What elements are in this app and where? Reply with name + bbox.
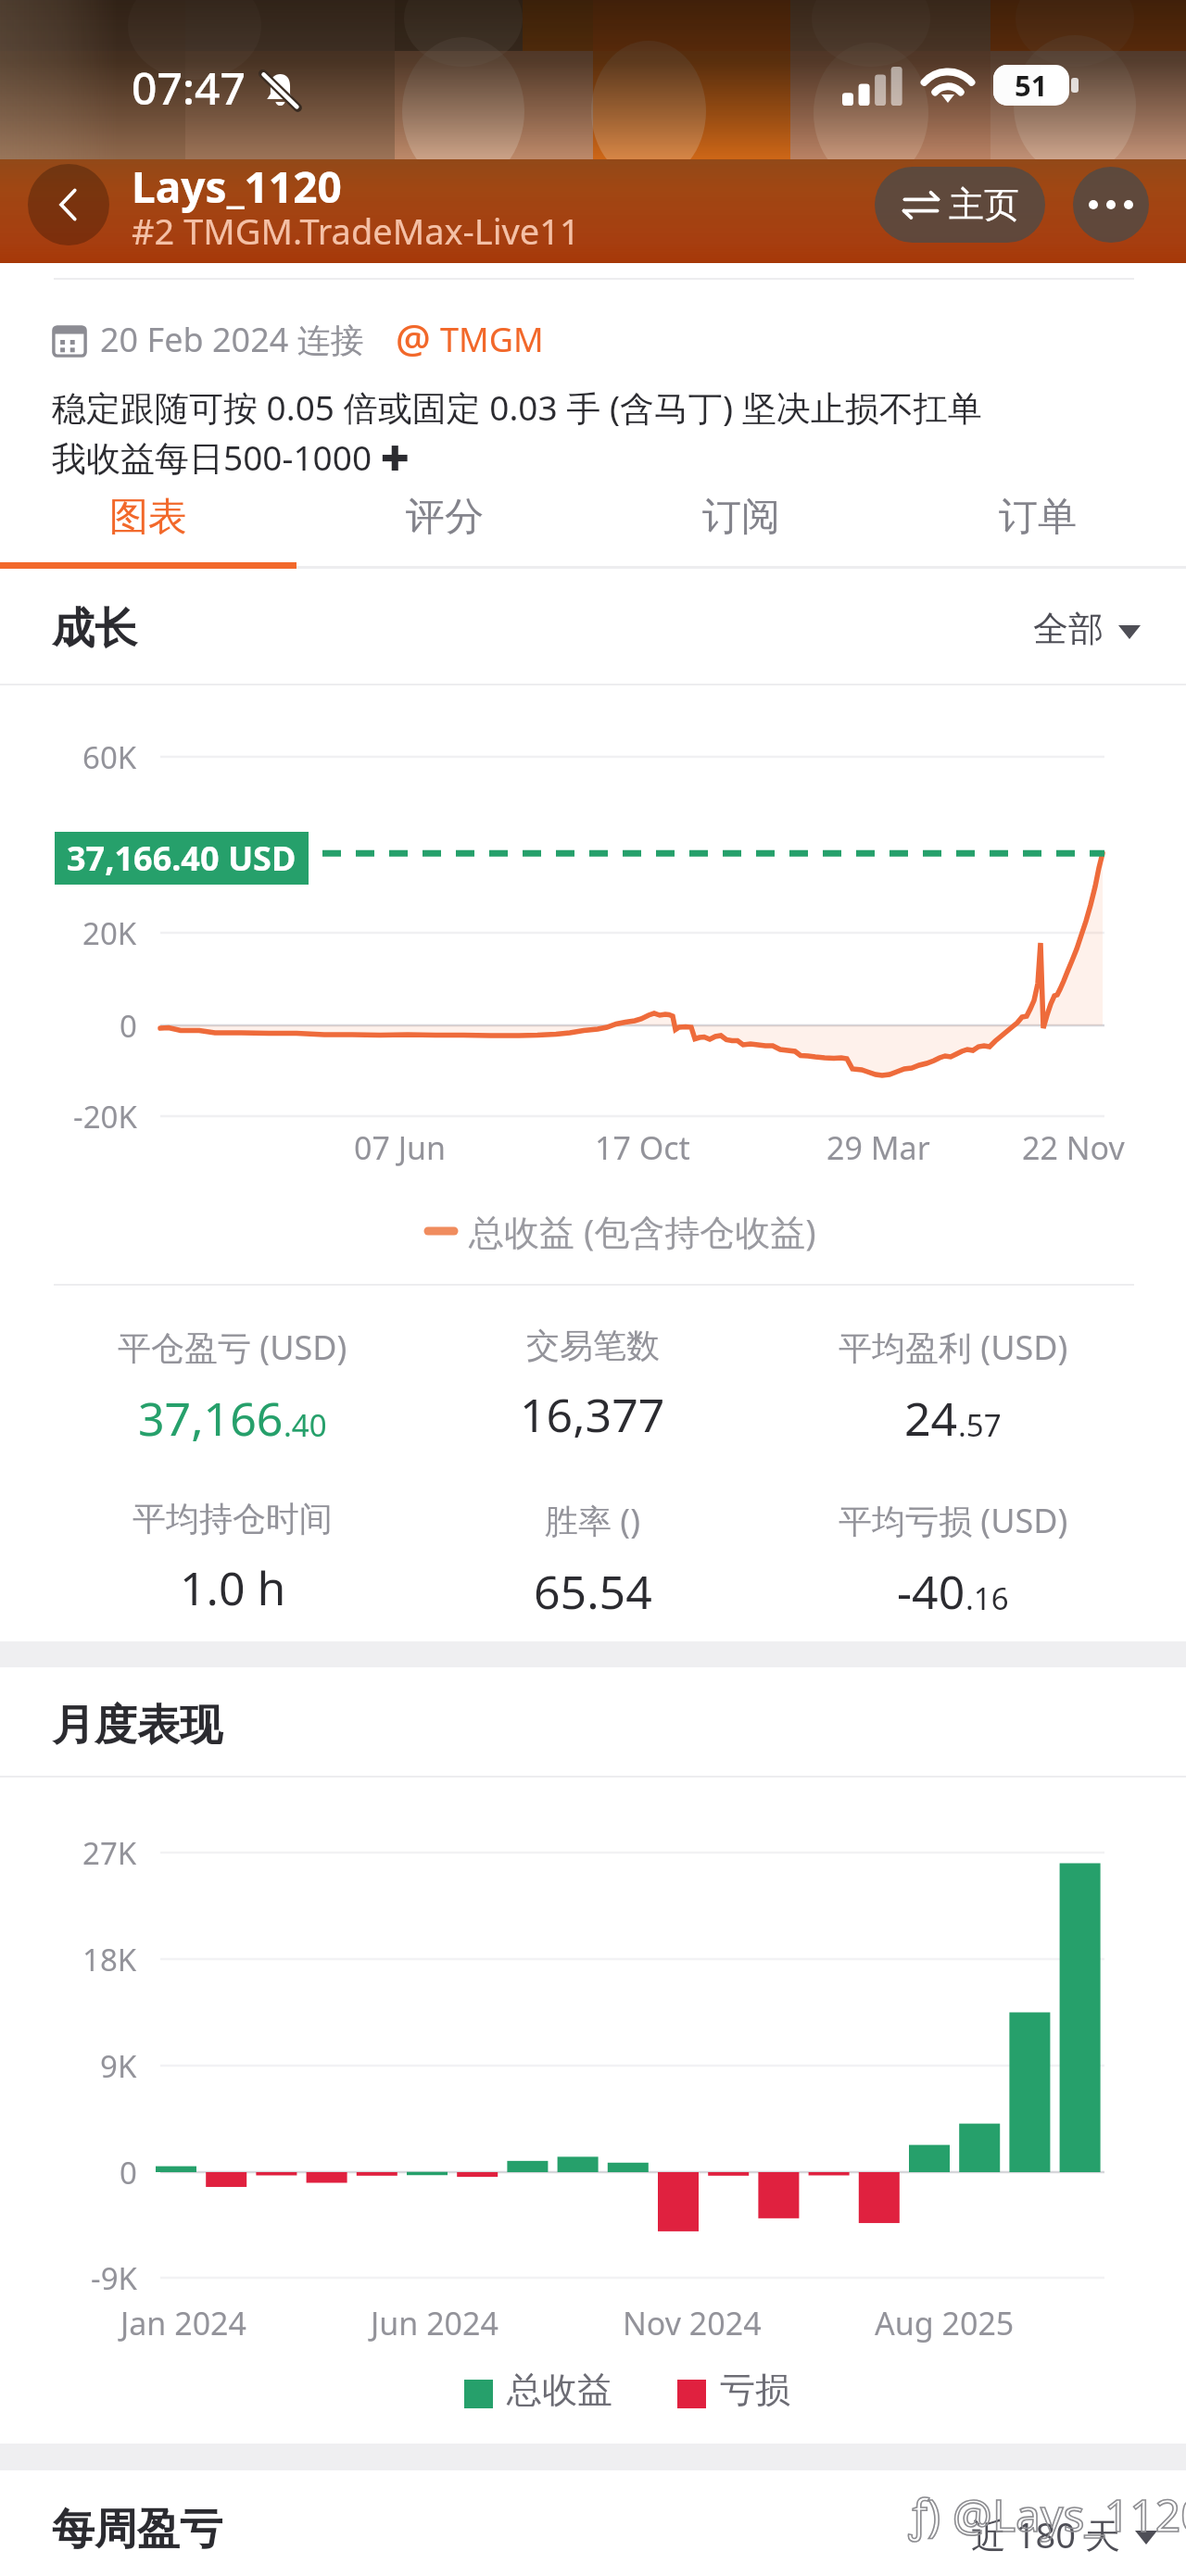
staticText: 订阅 bbox=[702, 493, 780, 542]
staticText: ƒ) @Lays_1120 bbox=[909, 2484, 1186, 2545]
staticText: -40 bbox=[897, 1560, 965, 1623]
staticText: 订单 bbox=[999, 493, 1077, 542]
staticText: 成长 bbox=[52, 602, 137, 656]
staticText: 0 bbox=[120, 2152, 137, 2193]
staticText: 65.54 bbox=[534, 1560, 652, 1623]
staticText: 60K bbox=[82, 736, 137, 778]
staticText: Jan 2024 bbox=[120, 2302, 246, 2344]
staticText: 全部 bbox=[1033, 607, 1104, 651]
staticText: 交易笔数 bbox=[526, 1325, 660, 1366]
button[interactable]: 订阅 bbox=[593, 478, 889, 569]
staticText: 月度表现 bbox=[52, 1699, 222, 1753]
staticText: 37,166 bbox=[138, 1387, 284, 1450]
staticText: 1.0 h bbox=[180, 1556, 286, 1619]
staticText: @ bbox=[396, 311, 431, 364]
button[interactable]: 近 180 天 bbox=[971, 2510, 1157, 2558]
button[interactable]: 订单 bbox=[889, 478, 1186, 569]
staticText: .40 bbox=[284, 1404, 327, 1446]
staticText: Nov 2024 bbox=[623, 2302, 762, 2344]
staticText: 9K bbox=[100, 2045, 137, 2087]
staticText: 胜率 () bbox=[545, 1498, 640, 1543]
staticText: 37,166.40 USD bbox=[67, 836, 296, 881]
staticText: 平均盈利 (USD) bbox=[839, 1325, 1068, 1370]
staticText: Aug 2025 bbox=[875, 2302, 1015, 2344]
button[interactable]: Back bbox=[28, 164, 109, 245]
button[interactable]: More options bbox=[1073, 167, 1149, 243]
staticText: 17 Oct bbox=[595, 1126, 690, 1169]
staticText: 总收益 bbox=[507, 2368, 612, 2412]
staticText: 平仓盈亏 (USD) bbox=[118, 1325, 347, 1370]
staticText: 平均亏损 (USD) bbox=[839, 1498, 1068, 1543]
button[interactable]: 全部 bbox=[1033, 607, 1141, 651]
staticText: 16,377 bbox=[520, 1383, 665, 1446]
staticText: Jun 2024 bbox=[371, 2302, 498, 2344]
staticText: 评分 bbox=[406, 493, 484, 542]
staticText: -20K bbox=[73, 1096, 137, 1137]
staticText: 18K bbox=[82, 1939, 137, 1980]
staticText: 20 Feb 2024 连接 bbox=[100, 317, 364, 362]
staticText: 图表 bbox=[109, 493, 187, 542]
button[interactable]: 图表 bbox=[0, 478, 296, 569]
staticText: 0 bbox=[120, 1005, 137, 1047]
staticText: 平均持仓时间 bbox=[132, 1498, 333, 1539]
staticText: 亏损 bbox=[720, 2368, 790, 2412]
staticText: 29 Mar bbox=[826, 1126, 930, 1169]
staticText: 22 Nov bbox=[1022, 1126, 1125, 1169]
staticText: 20K bbox=[82, 912, 137, 954]
staticText: .57 bbox=[958, 1404, 1002, 1446]
staticText: 27K bbox=[82, 1832, 137, 1874]
staticText: 近 180 天 bbox=[971, 2510, 1120, 2558]
staticText: -9K bbox=[91, 2257, 137, 2299]
staticText: 稳定跟随可按 0.05 倍或固定 0.03 手 (含马丁) 坚决止损不扛单 我收… bbox=[52, 383, 982, 481]
staticText: 07:47 bbox=[132, 57, 246, 118]
staticText: 07 Jun bbox=[354, 1126, 447, 1169]
button[interactable]: 主页 bbox=[875, 167, 1045, 243]
staticText: Lays_1120 bbox=[132, 157, 342, 216]
staticText: .16 bbox=[965, 1577, 1009, 1619]
staticText: TMGM bbox=[440, 317, 544, 362]
staticText: 每周盈亏 bbox=[52, 2503, 222, 2557]
staticText: 24 bbox=[904, 1387, 958, 1450]
staticText: #2 TMGM.TradeMax-Live11 bbox=[132, 207, 580, 255]
button[interactable]: 评分 bbox=[296, 478, 593, 569]
staticText: 主页 bbox=[949, 182, 1019, 227]
staticText: 总收益 (包含持仓收益) bbox=[469, 1207, 816, 1255]
staticText: 51 bbox=[1015, 66, 1048, 105]
